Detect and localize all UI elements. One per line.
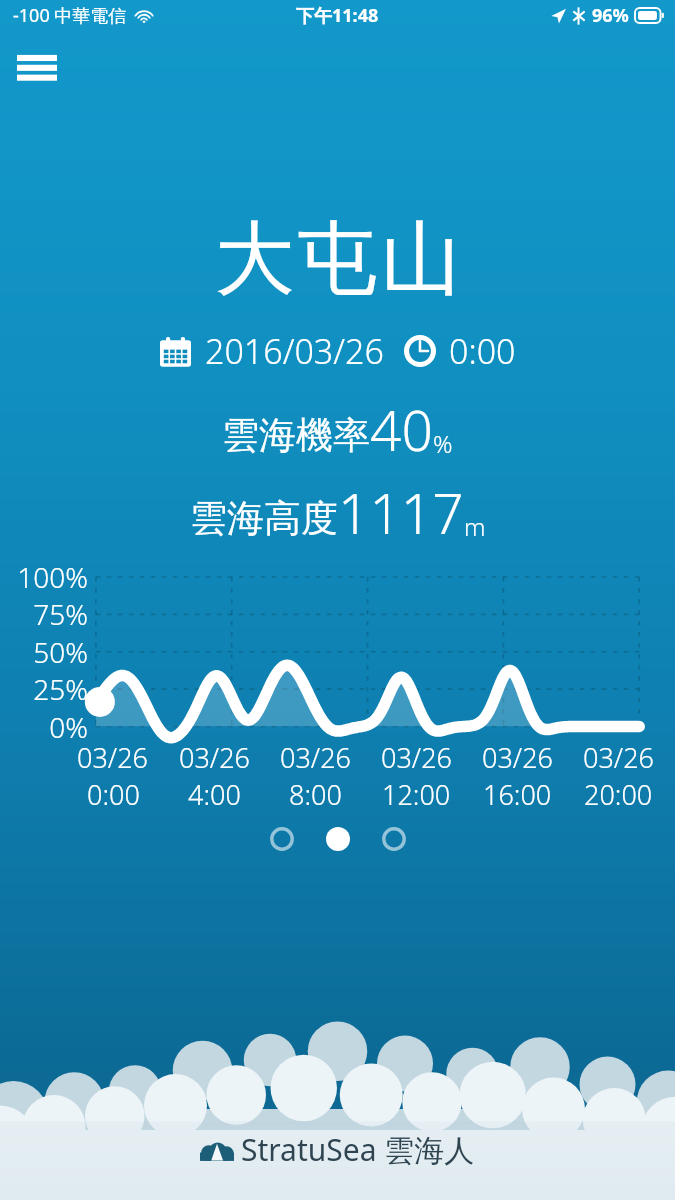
staticText: 03/26 xyxy=(280,739,352,776)
staticText: 03/26 xyxy=(179,739,251,776)
staticText: 75% xyxy=(0,595,88,633)
staticText: m xyxy=(464,510,486,543)
staticText: StratuSea 雲海人 xyxy=(241,1129,475,1170)
staticText: 1117 xyxy=(338,475,464,550)
staticText: 50% xyxy=(0,633,88,671)
button[interactable]: StratuSea 雲海人 xyxy=(200,1129,475,1170)
button[interactable]: Page 2 xyxy=(321,822,355,856)
staticText: 03/26 xyxy=(583,739,655,776)
staticText: 4:00 xyxy=(188,776,241,813)
staticText: 雲海機率 xyxy=(222,412,370,459)
staticText: 2016/03/26 xyxy=(205,328,384,374)
staticText: % xyxy=(433,427,453,460)
staticText: -100 中華電信 xyxy=(13,3,127,28)
staticText: 25% xyxy=(0,670,88,708)
staticText: 雲海高度 xyxy=(190,495,338,542)
staticText: 03/26 xyxy=(482,739,554,776)
button[interactable]: Menu xyxy=(8,41,66,99)
staticText: 下午11:48 xyxy=(296,3,379,28)
staticText: 100% xyxy=(0,558,88,596)
staticText: 16:00 xyxy=(483,776,552,813)
staticText: 40 xyxy=(370,392,433,467)
staticText: 12:00 xyxy=(382,776,451,813)
staticText: 大屯山 xyxy=(213,209,462,310)
staticText: 03/26 xyxy=(77,739,149,776)
staticText: 96% xyxy=(592,3,629,28)
button[interactable]: Page 1 xyxy=(265,822,299,856)
staticText: 0:00 xyxy=(449,328,516,374)
staticText: 8:00 xyxy=(289,776,342,813)
staticText: 03/26 xyxy=(381,739,453,776)
staticText: 0:00 xyxy=(87,776,140,813)
staticText: 0% xyxy=(0,708,88,746)
button[interactable]: Page 3 xyxy=(377,822,411,856)
staticText: 20:00 xyxy=(584,776,653,813)
